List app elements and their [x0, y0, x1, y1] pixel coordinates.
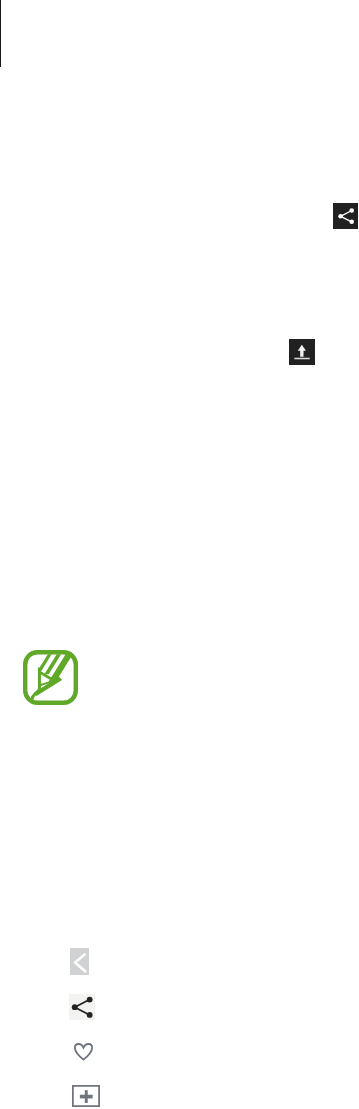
button[interactable]: Back [70, 948, 89, 975]
button[interactable]: Upload [289, 339, 315, 365]
button[interactable]: Favorite [74, 1042, 93, 1061]
button[interactable]: Add [72, 1085, 100, 1107]
button[interactable]: Share [69, 994, 95, 1020]
button[interactable]: S Note [23, 650, 78, 705]
button[interactable]: Share [333, 203, 358, 229]
